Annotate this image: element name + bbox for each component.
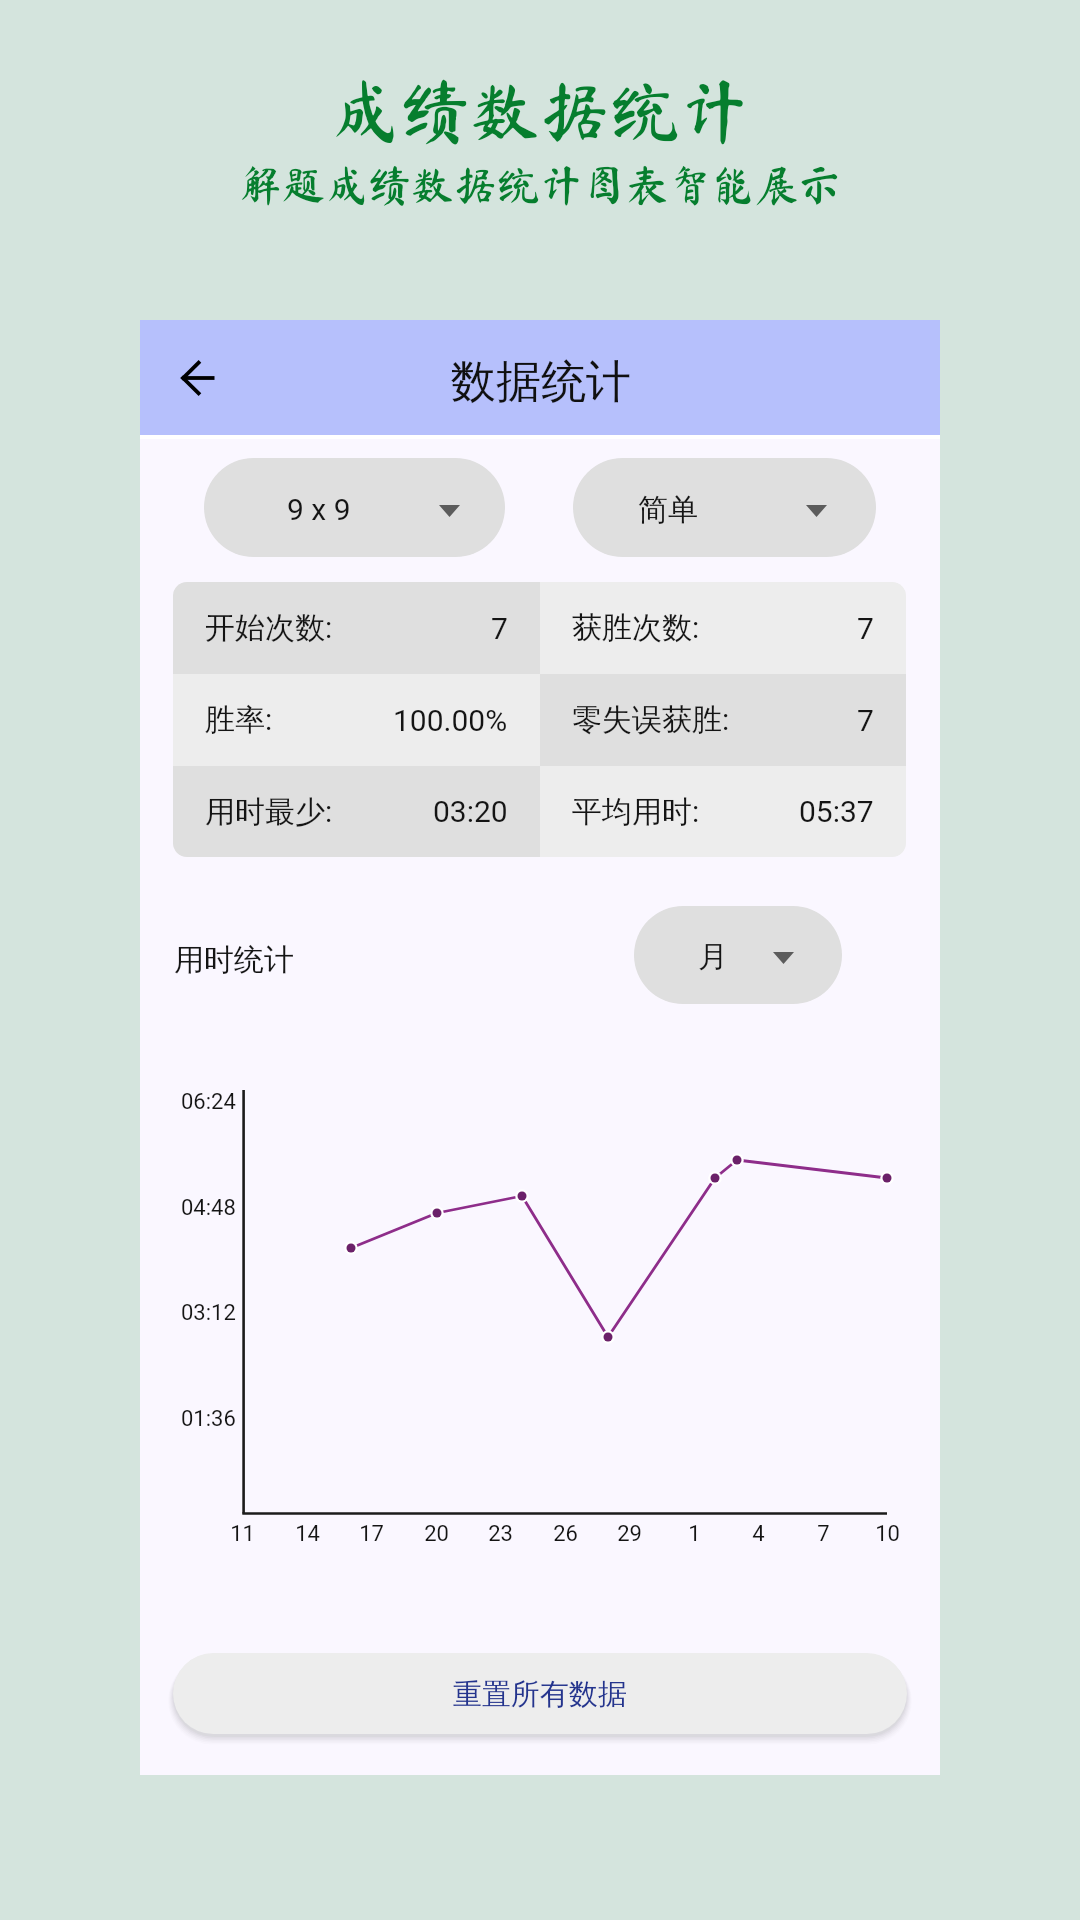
staticText: 用时最少:	[205, 793, 333, 831]
staticText: 26	[553, 1521, 578, 1547]
staticText: 7	[857, 611, 874, 646]
staticText: 7	[817, 1521, 830, 1547]
staticText: 胜率:	[205, 701, 273, 739]
staticText: 03:12	[181, 1300, 236, 1326]
button[interactable]: 月	[634, 906, 842, 1004]
staticText: 用时统计	[174, 941, 294, 979]
staticText: 解题成绩数据统计图表智能展示	[0, 163, 1080, 206]
staticText: 平均用时:	[572, 793, 700, 831]
staticText: 重置所有数据	[453, 1676, 627, 1713]
staticText: 29	[617, 1521, 642, 1547]
button[interactable]: 简单	[573, 458, 876, 557]
staticText: 开始次数:	[205, 609, 333, 647]
staticText: 简单	[638, 491, 698, 529]
button[interactable]: 重置所有数据	[173, 1653, 907, 1734]
staticText: 零失误获胜:	[572, 701, 730, 739]
staticText: 数据统计	[451, 354, 631, 411]
staticText: 04:48	[181, 1195, 236, 1221]
staticText: 10	[875, 1521, 900, 1547]
staticText: 100.00%	[393, 703, 508, 738]
staticText: 03:20	[433, 794, 508, 829]
staticText: 14	[295, 1521, 320, 1547]
staticText: 7	[491, 611, 508, 646]
staticText: 23	[488, 1521, 513, 1547]
staticText: 06:24	[181, 1089, 236, 1115]
staticText: 05:37	[799, 794, 874, 829]
staticText: 月	[698, 938, 728, 976]
staticText: 7	[857, 703, 874, 738]
button[interactable]: 9 x 9	[204, 458, 505, 557]
staticText: 11	[230, 1521, 255, 1547]
staticText: 01:36	[181, 1406, 236, 1432]
button[interactable]: Back	[155, 335, 241, 421]
staticText: 成绩数据统计	[0, 75, 1080, 145]
staticText: 20	[424, 1521, 449, 1547]
staticText: 17	[359, 1521, 384, 1547]
staticText: 9 x 9	[287, 492, 351, 527]
staticText: 获胜次数:	[572, 609, 700, 647]
staticText: 4	[752, 1521, 765, 1547]
staticText: 1	[688, 1521, 701, 1547]
